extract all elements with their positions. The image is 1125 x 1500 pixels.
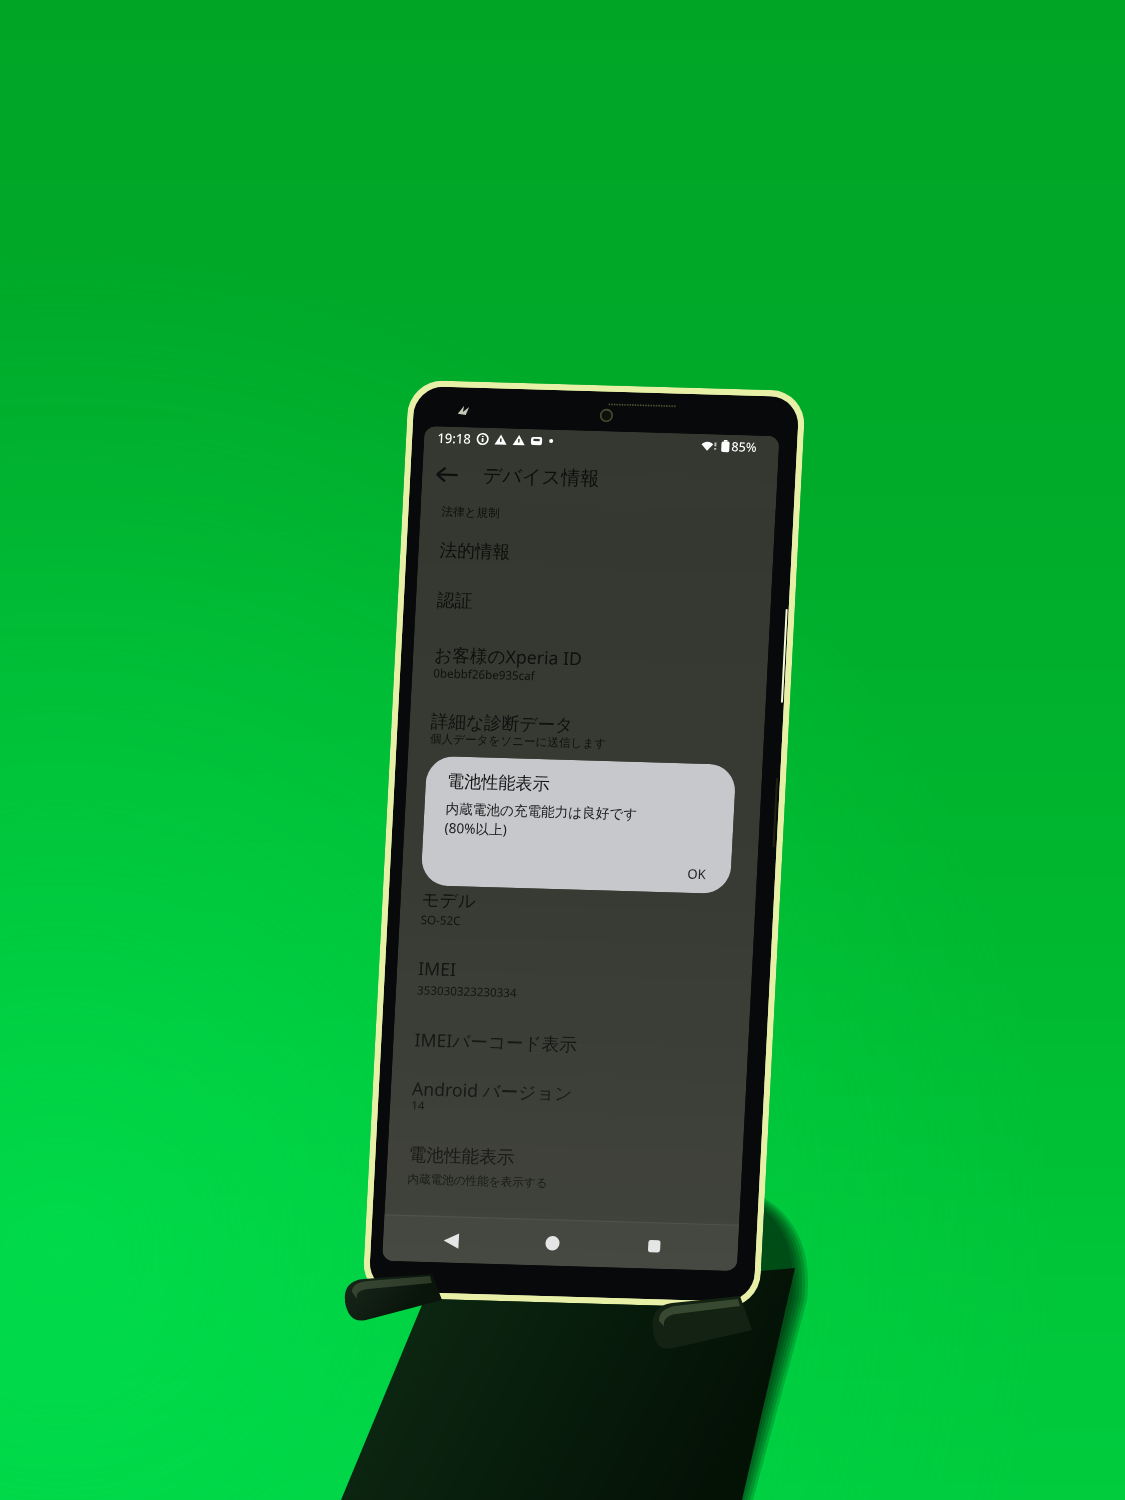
staticText: SO-52C xyxy=(420,912,461,929)
button[interactable]: 詳細な診断データ xyxy=(408,705,765,760)
staticText: Android バージョン xyxy=(411,1076,574,1105)
button[interactable]: OK xyxy=(681,860,713,887)
button[interactable]: モデル xyxy=(399,884,756,941)
staticText: 内蔵電池の充電能力は良好です (80%以上) xyxy=(444,800,638,842)
staticText: IMEIバーコード表示 xyxy=(414,1027,578,1056)
staticText: 認証 xyxy=(436,589,473,612)
staticText: 353030323230334 xyxy=(417,982,517,1001)
staticText: 14 xyxy=(411,1097,426,1114)
staticText: 個人データをソニーに送信します xyxy=(430,731,607,751)
button[interactable]: 電池性能表示 xyxy=(386,1138,743,1201)
button[interactable]: 法的情報 xyxy=(418,534,774,577)
button[interactable]: Back xyxy=(421,450,472,500)
button[interactable]: Android バージョン xyxy=(389,1071,746,1126)
staticText: IMEI xyxy=(418,956,457,981)
staticText: 19:18 xyxy=(437,428,472,448)
staticText: OK xyxy=(687,864,707,883)
button[interactable]: Recents xyxy=(633,1225,675,1267)
staticText: モデル xyxy=(421,888,477,912)
button[interactable]: IMEIバーコード表示 xyxy=(393,1022,749,1065)
button[interactable]: お客様のXperia ID xyxy=(412,637,769,694)
staticText: 85% xyxy=(731,438,757,456)
staticText: 0bebbf26be935caf xyxy=(433,665,535,684)
staticText: デバイス情報 xyxy=(482,463,600,491)
button[interactable]: Back xyxy=(429,1219,472,1261)
staticText: 電池性能表示 xyxy=(446,771,550,795)
staticText: 法的情報 xyxy=(439,539,511,563)
staticText: 電池性能表示 xyxy=(408,1143,515,1169)
button[interactable]: IMEI xyxy=(395,951,753,1011)
staticText: 法律と規制 xyxy=(441,504,500,520)
button[interactable]: Home xyxy=(531,1222,574,1264)
staticText: 詳細な診断データ xyxy=(430,710,574,736)
staticText: お客様のXperia ID xyxy=(434,642,583,670)
staticText: 内蔵電池の性能を表示する xyxy=(407,1172,549,1190)
button[interactable]: 認証 xyxy=(415,584,771,627)
